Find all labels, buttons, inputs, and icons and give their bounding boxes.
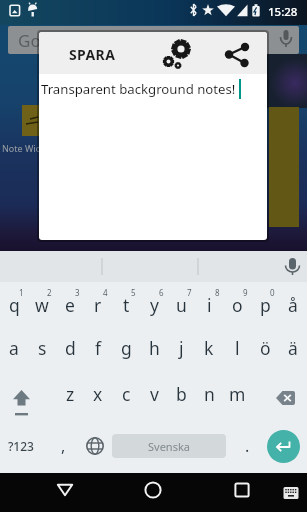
staticText: o [232, 293, 243, 317]
staticText: 4 [103, 287, 108, 298]
staticText: 7 [187, 287, 192, 298]
button[interactable] [281, 485, 301, 501]
button[interactable] [217, 36, 253, 72]
staticText: w [35, 293, 49, 317]
button[interactable]: q [0, 288, 28, 322]
button[interactable]: j [167, 331, 195, 365]
button[interactable]: , [49, 430, 77, 462]
staticText: g [121, 336, 132, 360]
staticText: 9 [243, 287, 248, 298]
staticText: t [123, 293, 130, 317]
button[interactable]: i [195, 288, 223, 322]
staticText: f [95, 336, 102, 360]
button[interactable]: a [0, 331, 28, 365]
staticText: ä [288, 336, 298, 360]
button[interactable]: h [140, 331, 168, 365]
staticText: Transparent background notes! [41, 80, 236, 98]
staticText: a [9, 336, 19, 360]
staticText: z [66, 382, 75, 406]
button[interactable]: ö [251, 331, 279, 365]
staticText: y [150, 293, 159, 317]
button[interactable]: c [112, 377, 140, 411]
button[interactable] [227, 475, 257, 505]
staticText: 3 [75, 287, 80, 298]
button[interactable]: k [195, 331, 223, 365]
button[interactable] [267, 430, 300, 463]
button[interactable]: n [195, 377, 223, 411]
button[interactable]: w [28, 288, 56, 322]
staticText: n [204, 382, 215, 406]
staticText: i [207, 293, 212, 317]
button[interactable]: ä [279, 331, 307, 365]
staticText: c [122, 382, 131, 406]
button[interactable] [50, 475, 80, 505]
button[interactable]: m [223, 377, 251, 411]
button[interactable]: v [140, 377, 168, 411]
staticText: å [288, 293, 298, 317]
button[interactable]: . [233, 430, 261, 462]
button[interactable]: å [279, 288, 307, 322]
staticText: m [229, 382, 246, 406]
button[interactable]: t [112, 288, 140, 322]
staticText: 1 [19, 287, 24, 298]
button[interactable]: s [28, 331, 56, 365]
button[interactable]: SPARA [62, 43, 122, 65]
staticText: x [93, 382, 103, 406]
button[interactable]: x [84, 377, 112, 411]
staticText: 5 [131, 287, 136, 298]
button[interactable]: r [84, 288, 112, 322]
button[interactable] [159, 34, 197, 72]
button[interactable]: p [251, 288, 279, 322]
button[interactable]: o [223, 288, 251, 322]
button[interactable]: u [167, 288, 195, 322]
staticText: 0 [270, 287, 275, 298]
staticText: 6 [159, 287, 164, 298]
button[interactable] [138, 475, 168, 505]
staticText: k [204, 336, 214, 360]
staticText: ?123 [8, 438, 34, 454]
staticText: j [179, 336, 184, 360]
staticText: b [176, 382, 187, 406]
staticText: 8 [215, 287, 220, 298]
button[interactable] [4, 381, 40, 417]
staticText: , [61, 435, 66, 457]
staticText: q [9, 293, 20, 317]
staticText: . [245, 435, 250, 457]
button[interactable]: Google [8, 26, 299, 54]
button[interactable]: d [56, 331, 84, 365]
button[interactable]: g [112, 331, 140, 365]
staticText: SPARA [69, 45, 116, 64]
staticText: e [65, 293, 75, 317]
button[interactable]: Svenska [112, 434, 226, 458]
button[interactable] [81, 432, 109, 460]
staticText: 2 [47, 287, 52, 298]
button[interactable]: l [223, 331, 251, 365]
staticText: h [149, 336, 160, 360]
staticText: s [38, 336, 47, 360]
button[interactable]: ?123 [4, 432, 38, 460]
button[interactable]: e [56, 288, 84, 322]
staticText: u [176, 293, 187, 317]
staticText: p [260, 293, 271, 317]
button[interactable] [268, 381, 304, 417]
staticText: 15:28 [268, 4, 298, 20]
staticText: ö [260, 336, 271, 360]
button[interactable]: f [84, 331, 112, 365]
button[interactable]: y [140, 288, 168, 322]
staticText: Note Wid [2, 142, 42, 154]
button[interactable]: b [167, 377, 195, 411]
staticText: v [150, 382, 159, 406]
button[interactable]: z [56, 377, 84, 411]
staticText: d [65, 336, 76, 360]
staticText: l [235, 336, 240, 360]
staticText: Svenska [148, 439, 190, 454]
staticText: r [94, 293, 102, 317]
staticText: Google [18, 29, 76, 52]
